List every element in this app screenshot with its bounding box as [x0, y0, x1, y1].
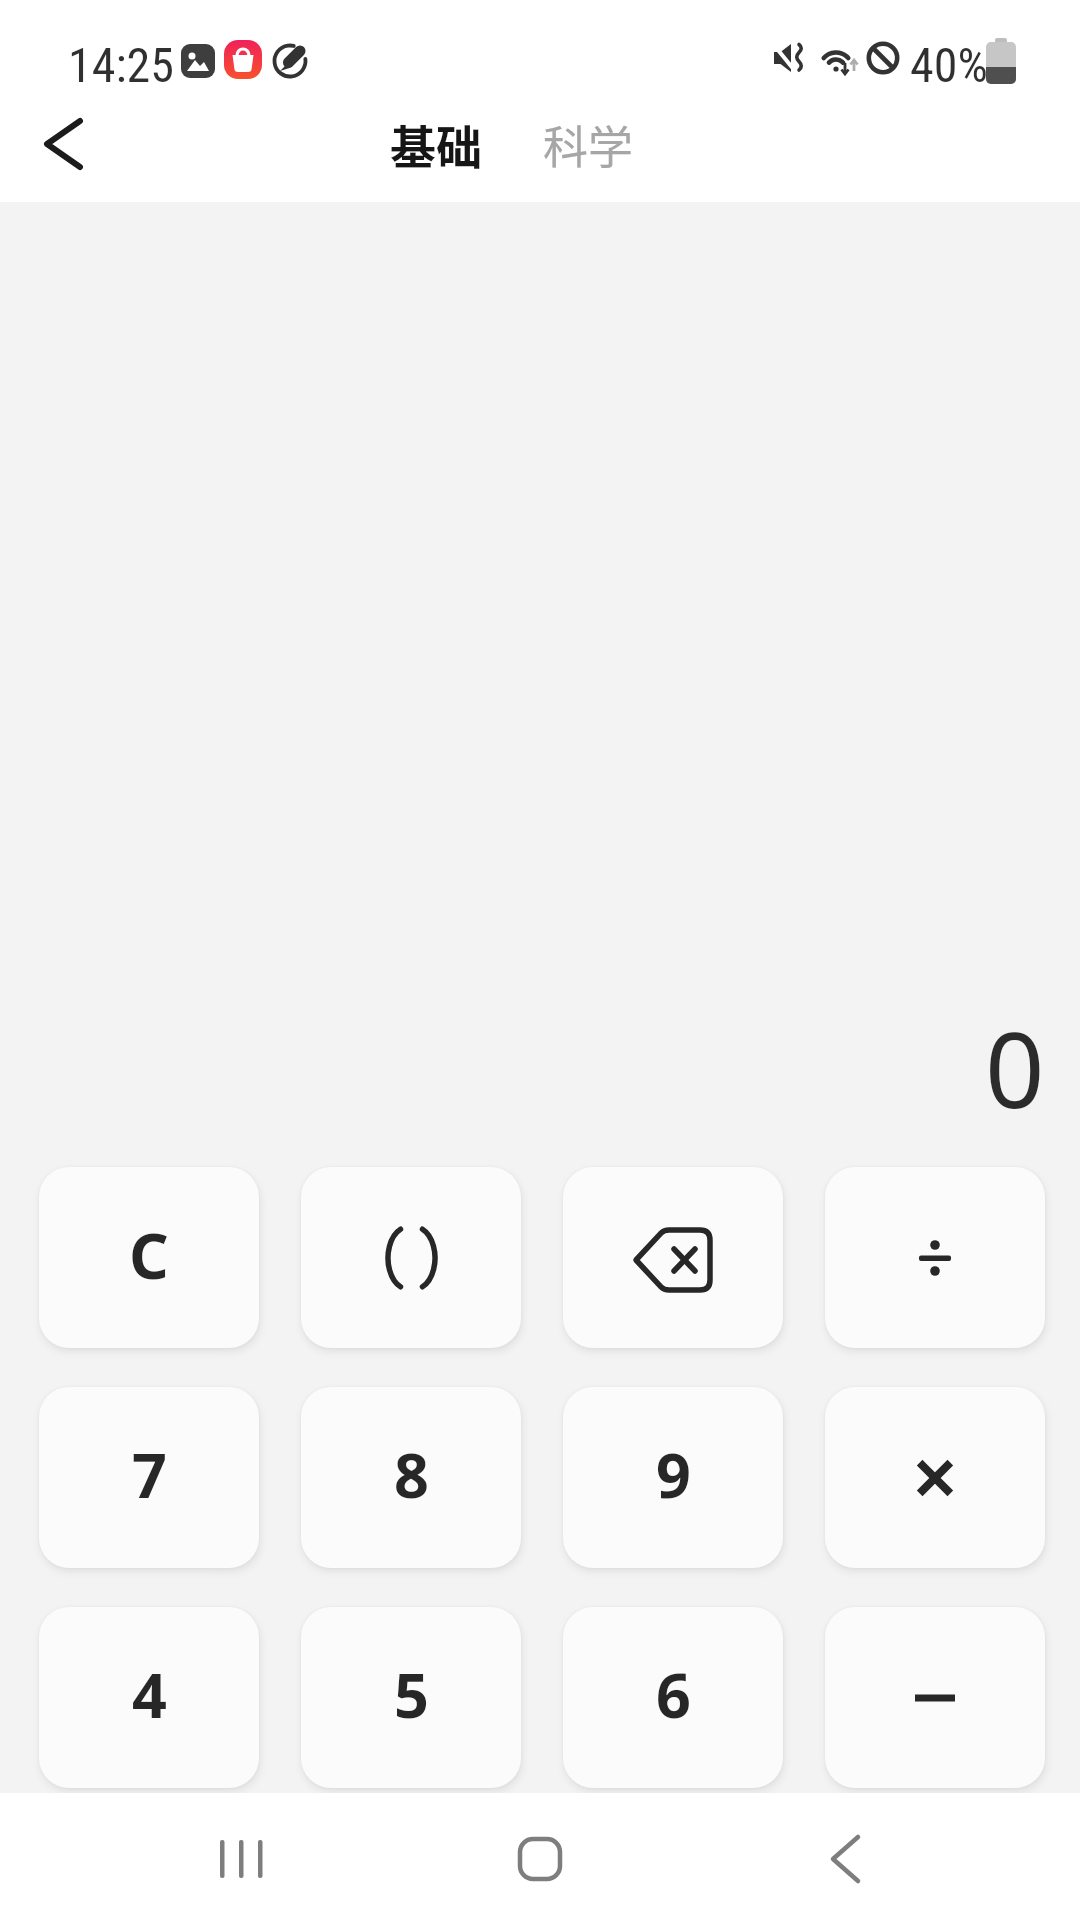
staticText: 科学 [543, 112, 634, 177]
button[interactable]: 科学 [513, 98, 663, 190]
button[interactable]: 5 [301, 1607, 521, 1788]
button[interactable] [480, 1799, 600, 1919]
staticText: 7 [132, 1433, 167, 1516]
staticText: 9 [656, 1433, 691, 1516]
button[interactable] [563, 1167, 783, 1348]
button[interactable] [825, 1167, 1045, 1348]
button[interactable] [301, 1167, 521, 1348]
staticText: C [129, 1213, 169, 1297]
button[interactable]: C [39, 1167, 259, 1348]
button[interactable]: 8 [301, 1387, 521, 1568]
button[interactable]: 基础 [361, 98, 511, 190]
staticText: 6 [656, 1653, 691, 1736]
staticText: 8 [394, 1433, 429, 1516]
staticText: 0 [985, 997, 1045, 1137]
button[interactable] [785, 1799, 905, 1919]
button[interactable]: 4 [39, 1607, 259, 1788]
button[interactable]: 6 [563, 1607, 783, 1788]
staticText: 40% [910, 37, 988, 93]
staticText: 基础 [390, 111, 482, 178]
staticText: 5 [394, 1653, 429, 1736]
button[interactable]: 9 [563, 1387, 783, 1568]
button[interactable] [825, 1607, 1045, 1788]
button[interactable] [182, 1799, 302, 1919]
button[interactable] [825, 1387, 1045, 1568]
staticText: 14:25 [68, 37, 174, 93]
button[interactable] [28, 109, 99, 179]
staticText: 4 [132, 1653, 167, 1736]
button[interactable]: 7 [39, 1387, 259, 1568]
